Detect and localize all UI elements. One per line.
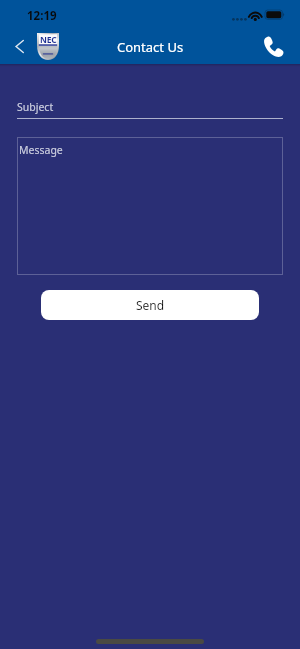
button[interactable]: Back: [4, 31, 35, 62]
staticText: Message: [19, 143, 63, 157]
button[interactable]: Call: [256, 29, 290, 63]
staticText: 12:19: [27, 8, 57, 24]
staticText: Subject: [17, 100, 54, 114]
staticText: Contact Us: [117, 38, 184, 56]
staticText: Send: [136, 297, 165, 313]
button[interactable]: Subject: [17, 92, 283, 118]
button[interactable]: Message: [17, 137, 283, 275]
staticText: NEC: [40, 34, 57, 46]
button[interactable]: Send: [41, 290, 259, 320]
